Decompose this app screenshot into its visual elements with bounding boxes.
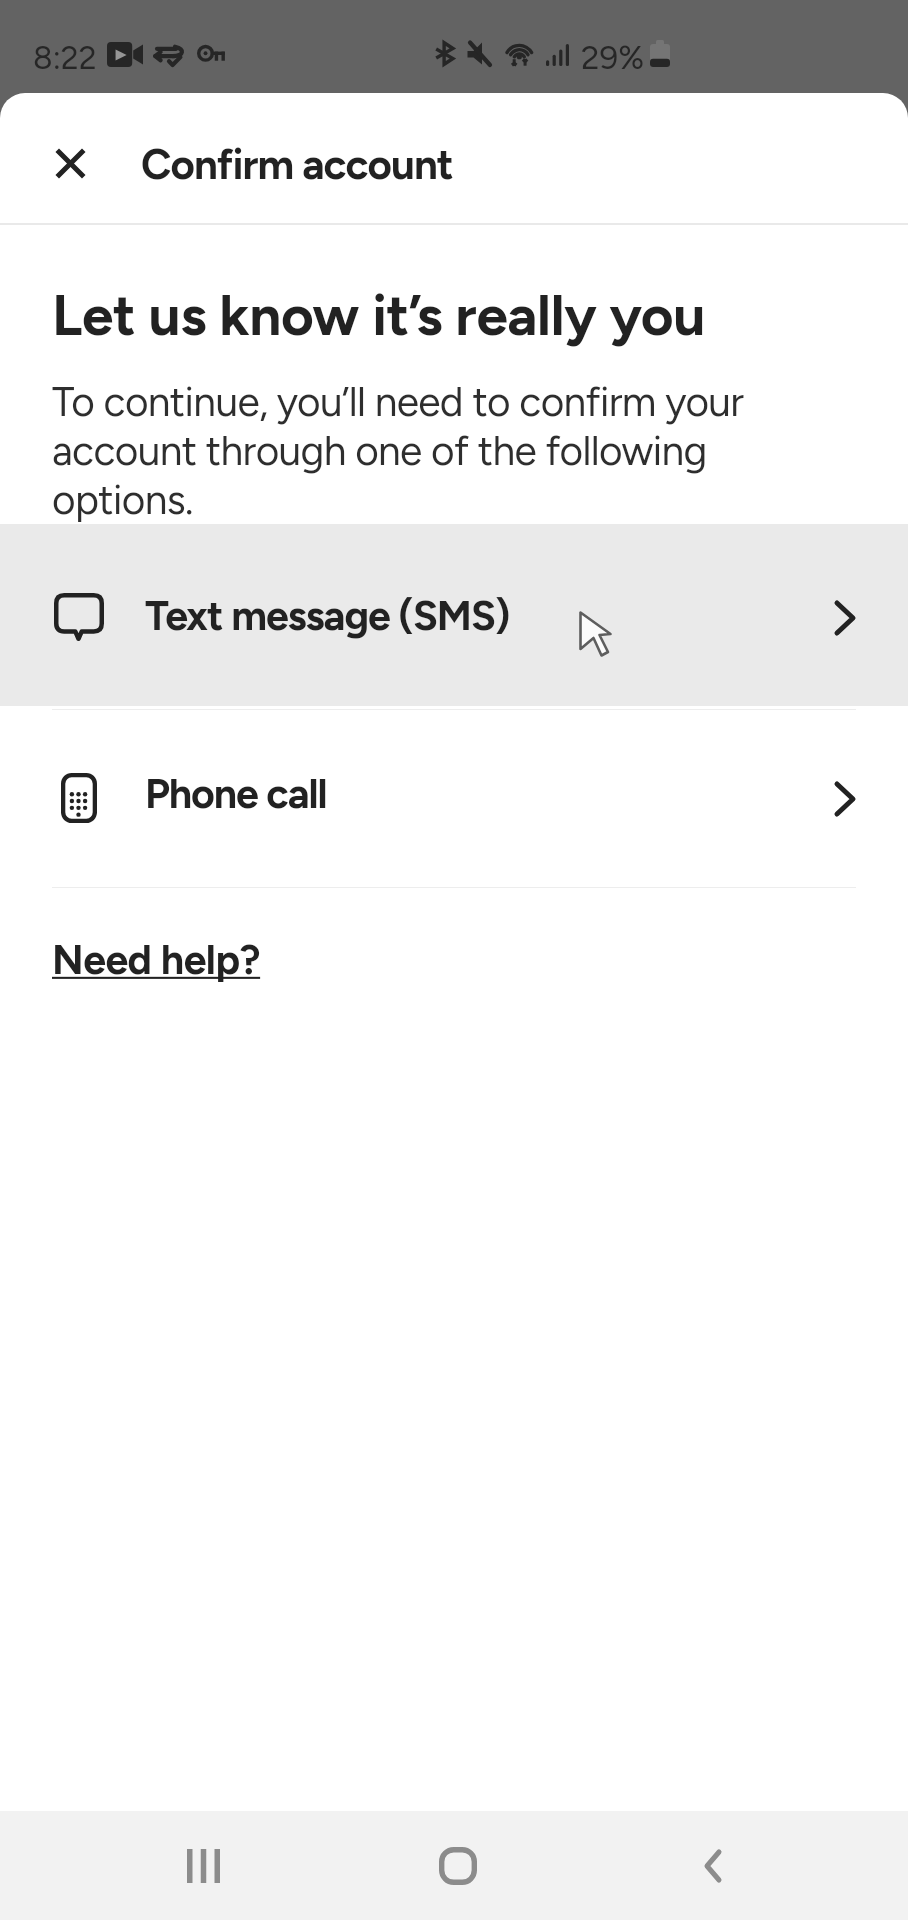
staticText: To continue, you’ll need to confirm your… [52, 377, 758, 524]
staticText: Phone call [145, 769, 327, 818]
staticText: 29% [581, 38, 645, 78]
button[interactable]: Back [658, 1811, 768, 1920]
button[interactable]: Close [26, 119, 114, 207]
staticText: Let us know it’s really you [52, 281, 706, 349]
staticText: Text message (SMS) [145, 591, 510, 640]
staticText: Confirm account [141, 139, 453, 189]
button[interactable]: Need help? [52, 935, 261, 984]
staticText: 8:22 [33, 39, 97, 77]
button[interactable]: Home [403, 1811, 513, 1920]
staticText: Need help? [52, 935, 261, 984]
button[interactable]: Recent apps [148, 1811, 258, 1920]
button[interactable]: Phone call [0, 710, 908, 887]
button[interactable]: Text message (SMS) [0, 524, 908, 706]
